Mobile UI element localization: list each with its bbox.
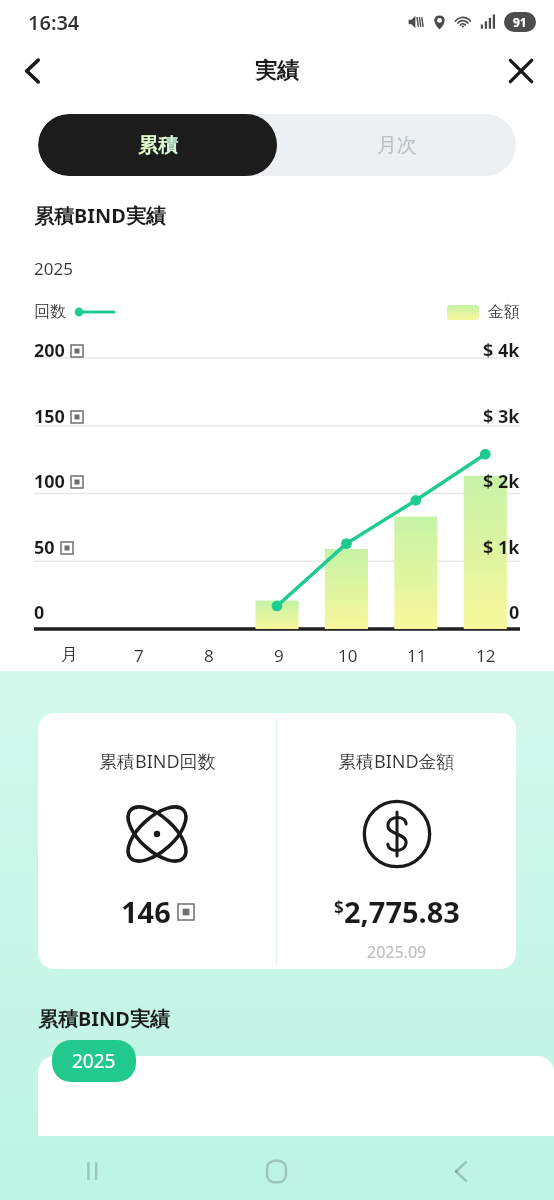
staticText: 11 — [407, 644, 427, 667]
staticText: 7 — [134, 644, 144, 667]
staticText: 100 — [34, 469, 65, 494]
button[interactable]: Back — [8, 46, 58, 96]
staticText: 10 — [338, 644, 358, 667]
staticText: 200 — [34, 338, 65, 363]
button[interactable]: 累積BIND回数 — [38, 713, 276, 969]
staticText: 月 — [61, 644, 78, 665]
staticText: 16:34 — [28, 9, 80, 36]
button[interactable]: 月次 — [277, 114, 516, 176]
staticText: 150 — [34, 404, 65, 429]
staticText: 2,775.83 — [344, 892, 460, 931]
staticText: 累積BIND実績 — [38, 1005, 170, 1032]
button[interactable]: 累積BIND金額 — [277, 713, 516, 969]
staticText: 50 — [34, 535, 55, 560]
staticText: $ 4k — [483, 338, 520, 363]
staticText: 累積BIND回数 — [99, 749, 216, 774]
staticText: 月次 — [377, 133, 417, 158]
staticText: 実績 — [255, 57, 299, 85]
staticText: 146 — [121, 892, 171, 931]
button[interactable]: 2025 — [52, 1040, 136, 1082]
staticText: $ 1k — [483, 535, 520, 560]
staticText: 12 — [476, 644, 496, 667]
staticText: 0 — [509, 600, 520, 625]
staticText: 累積BIND金額 — [338, 749, 455, 774]
button[interactable]: Close — [496, 46, 546, 96]
staticText: 91 — [513, 14, 527, 30]
button[interactable]: 累積 — [38, 114, 277, 176]
staticText: 8 — [204, 644, 214, 667]
staticText: 2025 — [72, 1048, 116, 1074]
staticText: 累積BIND実績 — [34, 202, 166, 229]
staticText: 金額 — [488, 302, 520, 322]
button[interactable]: 累積BIND回数 — [38, 713, 516, 969]
staticText: $ 2k — [483, 469, 520, 494]
staticText: 累積 — [138, 133, 178, 158]
staticText: 9 — [274, 644, 284, 667]
staticText: $ 3k — [483, 404, 520, 429]
staticText: 0 — [34, 600, 45, 625]
staticText: 2025 — [34, 257, 73, 280]
staticText: 回数 — [34, 302, 66, 322]
staticText: $ — [334, 896, 344, 919]
staticText: 2025.09 — [367, 941, 427, 963]
